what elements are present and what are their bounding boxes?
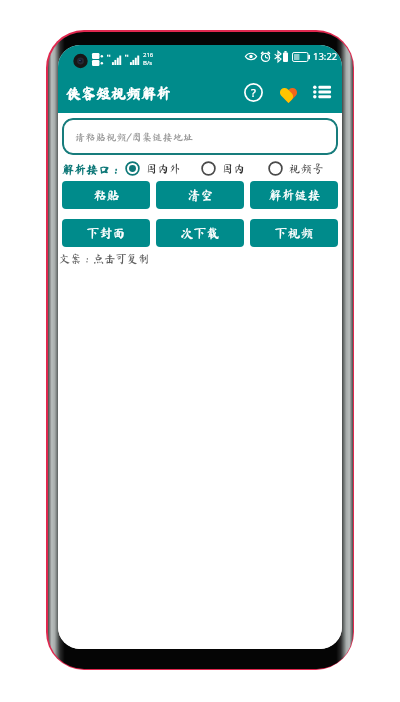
staticText: 解析链接 — [268, 189, 321, 202]
button[interactable]: Help — [240, 79, 266, 105]
staticText: 国内 — [222, 163, 245, 174]
button[interactable]: 国内外 — [125, 158, 181, 179]
button[interactable]: 下封面 — [62, 219, 150, 247]
button[interactable]: Favorites — [275, 79, 301, 105]
staticText: 侠客短视频解析 — [66, 86, 172, 101]
button[interactable]: 视频号 — [268, 158, 324, 179]
staticText: 次下载 — [180, 227, 220, 240]
button[interactable]: 下视频 — [250, 219, 338, 247]
button[interactable]: 请粘贴视频/图集链接地址 — [62, 118, 338, 155]
staticText: 清空 — [187, 189, 214, 202]
button[interactable]: 清空 — [156, 181, 244, 209]
staticText: 请粘贴视频/图集链接地址 — [75, 132, 194, 142]
staticText: 视频号 — [289, 163, 324, 174]
button[interactable]: 次下载 — [156, 219, 244, 247]
button[interactable]: 文案：点击可复制 — [59, 253, 150, 264]
staticText: 216 — [143, 51, 154, 59]
staticText: ? — [251, 85, 256, 100]
button[interactable]: 粘贴 — [62, 181, 150, 209]
staticText: 下视频 — [274, 227, 314, 240]
staticText: 下封面 — [86, 227, 126, 240]
staticText: B/s — [143, 59, 153, 67]
staticText: 国内外 — [146, 163, 181, 174]
button[interactable]: 解析链接 — [250, 181, 338, 209]
staticText: 解析接口： — [62, 163, 123, 175]
staticText: 粘贴 — [93, 189, 120, 202]
button[interactable]: Menu — [309, 79, 335, 105]
staticText: 13:22 — [313, 50, 338, 63]
button[interactable]: 国内 — [201, 158, 245, 179]
